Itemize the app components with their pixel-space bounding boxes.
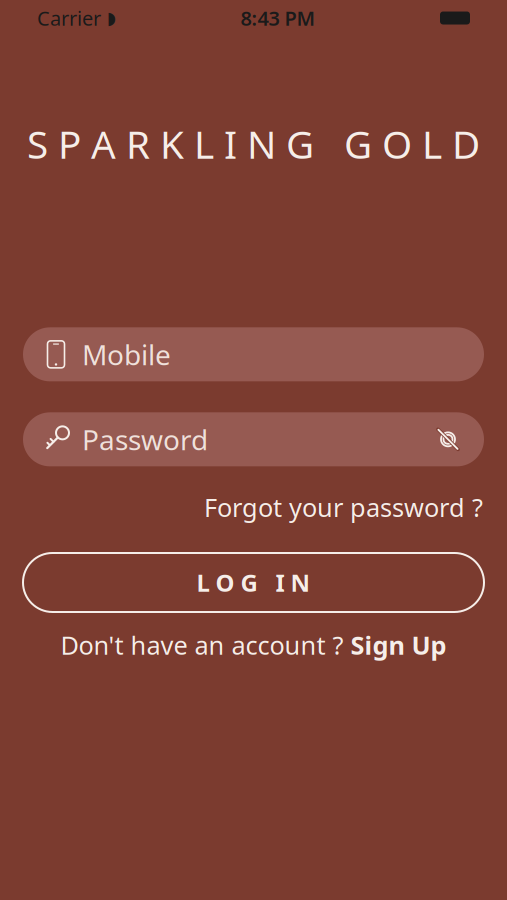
staticText: ◗ <box>107 8 116 28</box>
staticText: S P A R K L I N G G O L D <box>27 118 480 169</box>
staticText: L O G I N <box>196 567 310 598</box>
staticText: Carrier <box>37 5 101 31</box>
button[interactable]: Mobile <box>23 327 484 381</box>
button[interactable]: Password <box>23 412 484 466</box>
staticText: Don't have an account ? <box>60 628 350 662</box>
staticText: Password <box>82 421 208 458</box>
staticText: 8:43 PM <box>240 5 315 31</box>
button[interactable]: Don't have an account ? <box>60 628 446 662</box>
button[interactable]: L O G I N <box>23 553 484 612</box>
button[interactable]: Forgot your password ? <box>204 490 483 524</box>
staticText: Sign Up <box>350 628 446 662</box>
staticText: Mobile <box>82 336 171 373</box>
staticText: Forgot your password ? <box>204 490 483 524</box>
